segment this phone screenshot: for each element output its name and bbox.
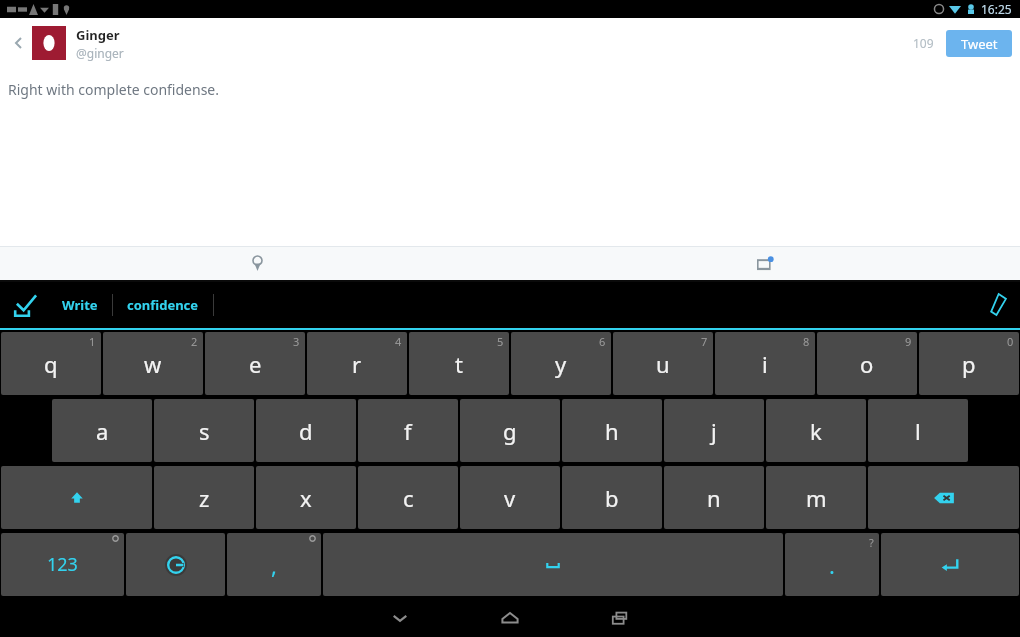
staticText: 3 (293, 334, 300, 349)
staticText: ? (869, 535, 874, 550)
button[interactable]: a (52, 399, 152, 462)
button[interactable]: , (227, 533, 321, 596)
button[interactable]: Back (8, 32, 30, 54)
button[interactable]: p (919, 332, 1019, 395)
button[interactable]: v (460, 466, 560, 529)
staticText: i (762, 349, 768, 379)
button[interactable]: f (358, 399, 458, 462)
staticText: p (962, 349, 976, 379)
staticText: n (707, 483, 721, 513)
staticText: b (605, 483, 619, 513)
button[interactable]: b (562, 466, 662, 529)
button[interactable]: Space (323, 533, 783, 596)
button[interactable]: Tweet (946, 30, 1012, 57)
button[interactable]: Backspace (868, 466, 1019, 529)
button[interactable]: Handwriting (978, 287, 1014, 323)
button[interactable]: Accept (10, 289, 42, 321)
button[interactable]: c (358, 466, 458, 529)
button[interactable]: Ginger keyboard (126, 533, 225, 596)
staticText: 8 (803, 334, 810, 349)
button[interactable]: k (766, 399, 866, 462)
staticText: . (829, 550, 835, 580)
button[interactable]: t (409, 332, 509, 395)
staticText: 2 (191, 334, 198, 349)
button[interactable]: u (613, 332, 713, 395)
staticText: h (605, 416, 619, 446)
staticText: g (503, 416, 517, 446)
button[interactable]: Add location (240, 247, 274, 280)
button[interactable]: z (154, 466, 254, 529)
staticText: k (810, 416, 822, 446)
staticText: , (271, 550, 277, 580)
staticText: 0 (1007, 334, 1014, 349)
button[interactable]: y (511, 332, 611, 395)
staticText: s (199, 416, 210, 446)
staticText: c (403, 483, 414, 513)
button[interactable]: i (715, 332, 815, 395)
button[interactable]: h (562, 399, 662, 462)
button[interactable]: Recent apps (598, 598, 642, 637)
staticText: v (504, 483, 516, 513)
button[interactable]: q (1, 332, 101, 395)
staticText: m (806, 483, 827, 513)
staticText: 1 (89, 334, 96, 349)
staticText: Right with complete confidense. (8, 80, 220, 99)
staticText: e (249, 349, 262, 379)
button[interactable]: w (103, 332, 203, 395)
button[interactable]: e (205, 332, 305, 395)
staticText: q (44, 349, 58, 379)
button[interactable]: confidence (121, 290, 205, 320)
button[interactable]: Write (56, 290, 104, 320)
staticText: t (455, 349, 463, 379)
staticText: a (96, 416, 109, 446)
button[interactable]: Add photo (748, 247, 782, 280)
staticText: 109 (913, 35, 934, 51)
staticText: Tweet (961, 35, 998, 53)
staticText: 9 (905, 334, 912, 349)
button[interactable]: s (154, 399, 254, 462)
staticText: 4 (395, 334, 402, 349)
staticText: 5 (497, 334, 504, 349)
staticText: Write (62, 296, 98, 314)
staticText: 6 (599, 334, 606, 349)
staticText: confidence (127, 296, 199, 314)
staticText: 123 (47, 552, 78, 577)
button[interactable]: r (307, 332, 407, 395)
button[interactable]: Home (488, 598, 532, 637)
button[interactable]: g (460, 399, 560, 462)
button[interactable]: n (664, 466, 764, 529)
button[interactable]: d (256, 399, 356, 462)
staticText: z (199, 483, 210, 513)
staticText: d (299, 416, 313, 446)
button[interactable]: x (256, 466, 356, 529)
staticText: l (915, 416, 921, 446)
button[interactable]: Hide keyboard (378, 598, 422, 637)
staticText: @ginger (76, 45, 124, 61)
button[interactable]: m (766, 466, 866, 529)
button[interactable]: 123 (1, 533, 124, 596)
staticText: 16:25 (981, 1, 1012, 17)
staticText: Ginger (76, 26, 120, 44)
button[interactable]: j (664, 399, 764, 462)
button[interactable]: Shift (1, 466, 152, 529)
staticText: u (656, 349, 670, 379)
staticText: x (300, 483, 312, 513)
button[interactable]: . (785, 533, 879, 596)
staticText: y (555, 349, 567, 379)
staticText: w (144, 349, 162, 379)
button[interactable]: Enter (881, 533, 1019, 596)
staticText: 7 (701, 334, 708, 349)
staticText: j (711, 416, 717, 446)
staticText: r (352, 349, 362, 379)
button[interactable]: o (817, 332, 917, 395)
button[interactable]: l (868, 399, 968, 462)
staticText: o (860, 349, 874, 379)
staticText: f (404, 416, 412, 446)
